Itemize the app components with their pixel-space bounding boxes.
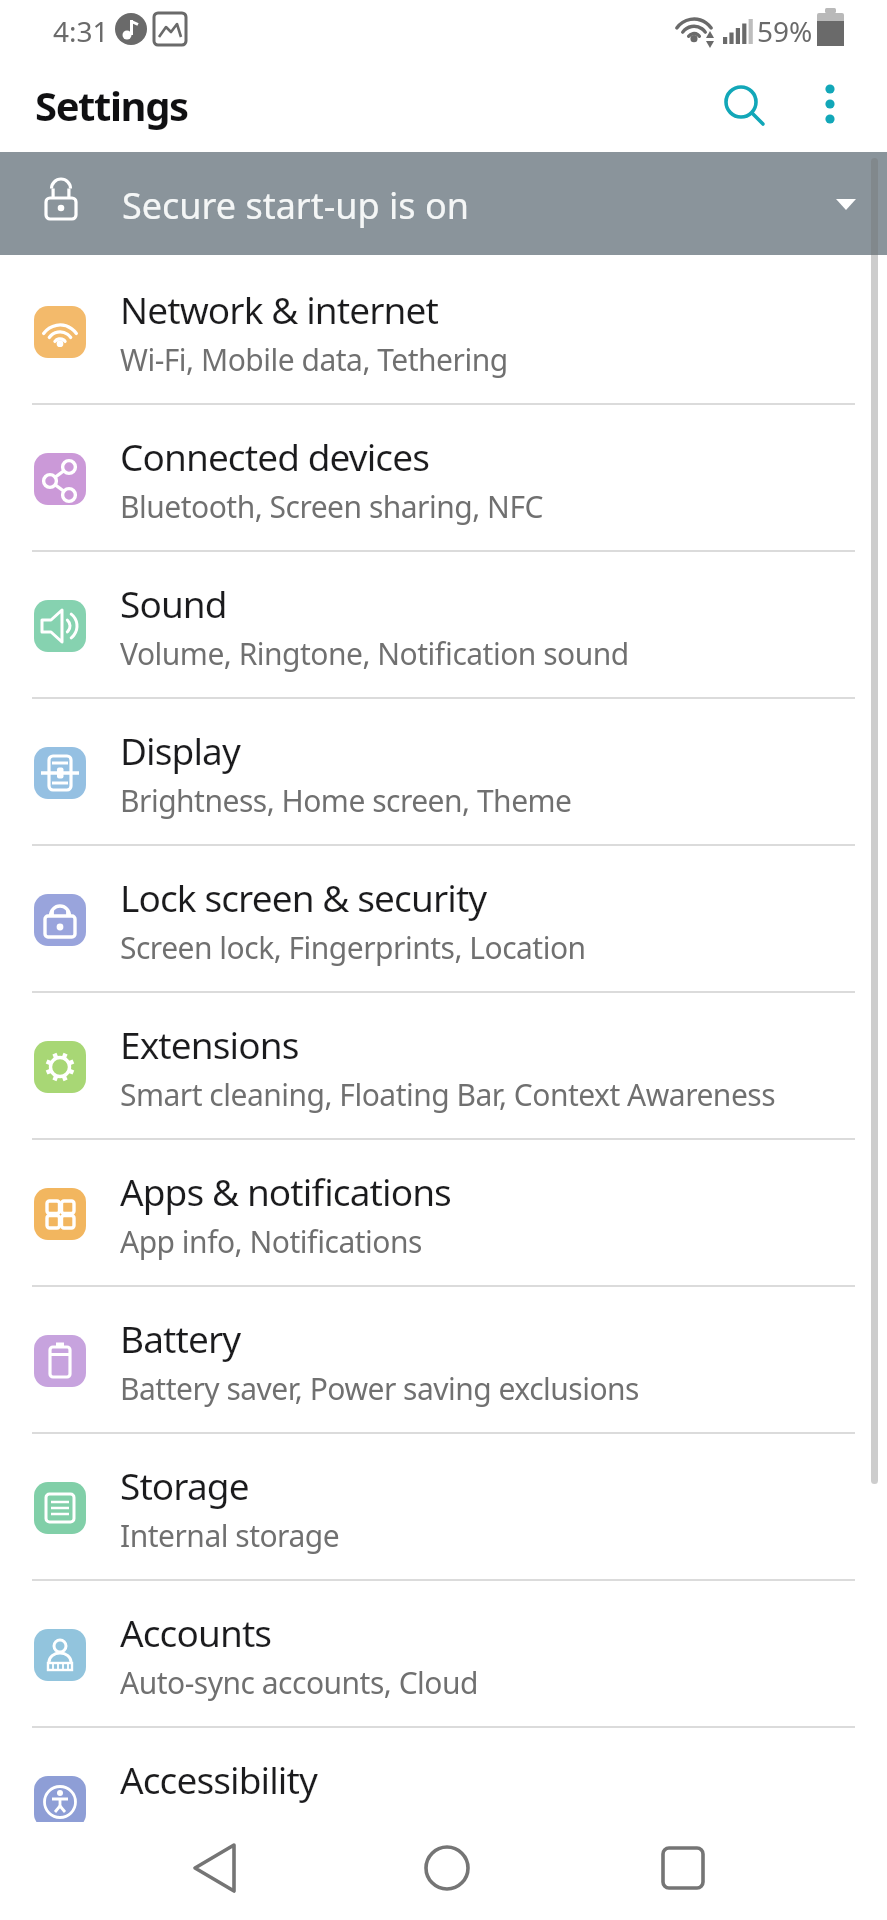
staticText: Accessibility [120, 1754, 317, 1804]
button[interactable]: Battery [0, 1287, 887, 1434]
button[interactable]: Secure start-up is on [0, 152, 887, 255]
staticText: Battery saver, Power saving exclusions [120, 1368, 639, 1409]
staticText: Display [120, 725, 240, 775]
button[interactable] [163, 1822, 261, 1920]
button[interactable]: Connected devices [0, 405, 887, 552]
button[interactable]: Network & internet [0, 258, 887, 405]
button[interactable]: Extensions [0, 993, 887, 1140]
staticText: Secure start-up is on [122, 181, 469, 230]
staticText: Lock screen & security [120, 872, 487, 922]
button[interactable]: Lock screen & security [0, 846, 887, 993]
button[interactable]: Accounts [0, 1581, 887, 1728]
button[interactable]: Accessibility [0, 1728, 887, 1875]
staticText: Bluetooth, Screen sharing, NFC [120, 486, 543, 527]
button[interactable] [397, 1822, 495, 1920]
staticText: Sound [120, 578, 227, 628]
staticText: Screen lock, Fingerprints, Location [120, 927, 586, 968]
staticText: Brightness, Home screen, Theme [120, 780, 572, 821]
staticText: Volume, Ringtone, Notification sound [120, 633, 629, 674]
staticText: Internal storage [120, 1515, 340, 1556]
staticText: Smart cleaning, Floating Bar, Context Aw… [120, 1074, 776, 1115]
staticText: App info, Notifications [120, 1221, 422, 1262]
staticText: Settings [35, 78, 188, 132]
staticText: 59% [757, 12, 813, 50]
staticText: 4:31 [53, 12, 109, 50]
button[interactable]: Display [0, 699, 887, 846]
button[interactable] [716, 76, 768, 128]
staticText: Auto-sync accounts, Cloud [120, 1662, 478, 1703]
staticText: Apps & notifications [120, 1166, 451, 1216]
staticText: Connected devices [120, 431, 430, 481]
button[interactable] [806, 76, 854, 124]
button[interactable] [631, 1822, 729, 1920]
staticText: Battery [120, 1313, 241, 1363]
button[interactable]: Apps & notifications [0, 1140, 887, 1287]
staticText: Extensions [120, 1019, 299, 1069]
staticText: Network & internet [120, 284, 438, 334]
button[interactable]: Sound [0, 552, 887, 699]
staticText: Wi-Fi, Mobile data, Tethering [120, 339, 508, 380]
staticText: Accounts [120, 1607, 272, 1657]
staticText: Storage [120, 1460, 249, 1510]
button[interactable]: Storage [0, 1434, 887, 1581]
